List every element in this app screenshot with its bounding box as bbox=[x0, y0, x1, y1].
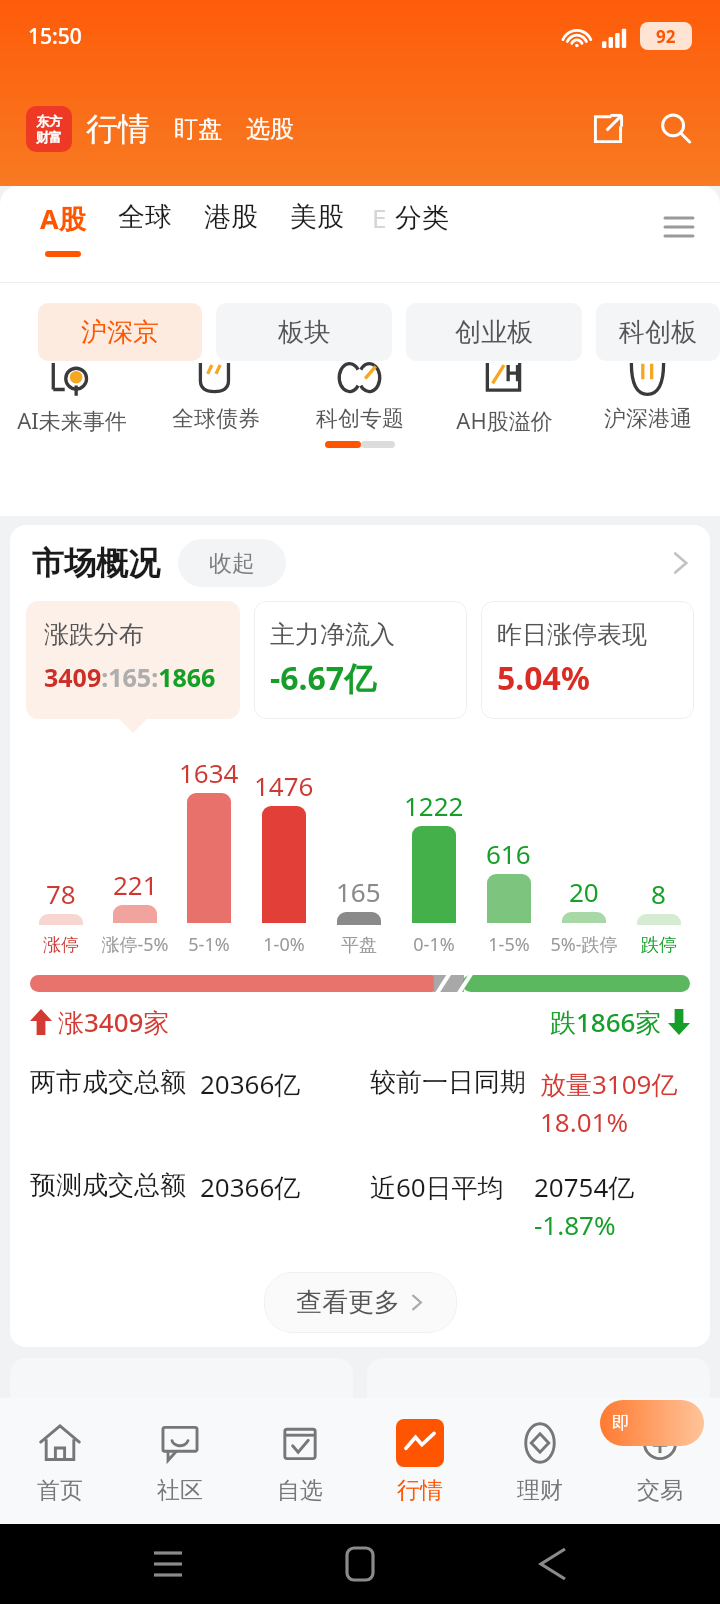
staticText: 分类 bbox=[395, 201, 449, 235]
staticText: 近60日平均 bbox=[370, 1169, 504, 1205]
staticText: 昨日涨停表现 bbox=[497, 619, 647, 650]
staticText: 5-1% bbox=[188, 932, 230, 957]
staticText: 92 bbox=[656, 25, 676, 48]
staticText: 理财 bbox=[517, 1476, 563, 1505]
staticText: 行情 bbox=[397, 1476, 443, 1505]
staticText: 涨跌分布 bbox=[44, 619, 144, 650]
staticText: 放量3109亿 bbox=[540, 1066, 678, 1102]
button[interactable]: 全球债券 bbox=[144, 363, 288, 433]
staticText: 221 bbox=[113, 867, 158, 902]
staticText: 科创专题 bbox=[316, 405, 404, 433]
staticText: 全球 bbox=[118, 200, 172, 234]
staticText: 20366亿 bbox=[200, 1169, 301, 1205]
button[interactable]: 首页 bbox=[0, 1398, 120, 1524]
button[interactable]: AI未来事件 bbox=[0, 363, 144, 435]
button[interactable]: Share bbox=[586, 107, 630, 151]
staticText: 创业板 bbox=[455, 316, 533, 349]
staticText: 3409:165:1866 bbox=[44, 660, 216, 694]
staticText: -6.67亿 bbox=[270, 656, 377, 700]
staticText: 预测成交总额 bbox=[30, 1169, 186, 1202]
staticText: 两市成交总额 bbox=[30, 1066, 186, 1099]
staticText: 165 bbox=[336, 874, 381, 909]
button[interactable]: 选股 bbox=[246, 114, 294, 144]
button[interactable]: 沪深港通 bbox=[576, 363, 720, 433]
staticText: 收起 bbox=[209, 549, 255, 578]
staticText: 美股 bbox=[290, 200, 344, 234]
button[interactable]: AH股溢价 bbox=[432, 363, 576, 435]
staticText: 财富 bbox=[36, 129, 62, 145]
button[interactable]: 主力净流入 bbox=[254, 601, 467, 719]
button[interactable]: Home bbox=[335, 1539, 385, 1589]
button[interactable]: 昨日涨停表现 bbox=[481, 601, 694, 719]
button[interactable]: 板块 bbox=[216, 303, 392, 361]
staticText: 自选 bbox=[277, 1476, 323, 1505]
staticText: 18.01% bbox=[540, 1104, 629, 1139]
staticText: E bbox=[372, 200, 387, 235]
button[interactable]: 查看更多 bbox=[264, 1272, 457, 1333]
staticText: AI未来事件 bbox=[17, 405, 127, 435]
staticText: 东方 bbox=[36, 113, 62, 129]
button[interactable]: 社区 bbox=[120, 1398, 240, 1524]
staticText: 社区 bbox=[157, 1476, 203, 1505]
staticText: 1-5% bbox=[488, 932, 530, 957]
button[interactable]: 盯盘 bbox=[174, 114, 222, 144]
button[interactable]: All categories bbox=[652, 200, 706, 254]
staticText: 20 bbox=[569, 874, 599, 909]
staticText: 首页 bbox=[37, 1476, 83, 1505]
staticText: 5.04% bbox=[497, 656, 590, 700]
button[interactable]: Back bbox=[528, 1539, 578, 1589]
staticText: -1.87% bbox=[534, 1207, 616, 1242]
staticText: 涨停-5% bbox=[101, 932, 169, 957]
staticText: 查看更多 bbox=[296, 1286, 400, 1319]
staticText: 15:50 bbox=[28, 22, 82, 51]
staticText: 交易 bbox=[637, 1476, 683, 1505]
staticText: 跌停 bbox=[641, 934, 677, 957]
button[interactable]: 科创板 bbox=[596, 303, 720, 361]
staticText: 涨3409家 bbox=[58, 1004, 170, 1040]
staticText: 沪深港通 bbox=[604, 405, 692, 433]
staticText: 沪深京 bbox=[81, 316, 159, 349]
button[interactable]: 涨跌分布 bbox=[26, 601, 240, 719]
staticText: 较前一日同期 bbox=[370, 1066, 526, 1099]
button[interactable]: Search bbox=[654, 107, 698, 151]
staticText: 0-1% bbox=[413, 932, 455, 957]
button[interactable]: 行情 bbox=[360, 1398, 480, 1524]
button[interactable]: 港股 bbox=[188, 200, 274, 248]
staticText: AH股溢价 bbox=[456, 405, 553, 435]
staticText: 涨停 bbox=[43, 934, 79, 957]
staticText: 跌1866家 bbox=[550, 1004, 662, 1040]
staticText: 78 bbox=[46, 876, 76, 911]
staticText: 港股 bbox=[204, 200, 258, 234]
staticText: 1634 bbox=[179, 755, 239, 790]
button[interactable]: 创业板 bbox=[406, 303, 582, 361]
button[interactable]: 全球 bbox=[102, 200, 188, 248]
staticText: 板块 bbox=[278, 316, 330, 349]
staticText: 市场概况 bbox=[32, 543, 160, 583]
button[interactable]: 沪深京 bbox=[38, 303, 202, 361]
staticText: 616 bbox=[486, 836, 531, 871]
staticText: 8 bbox=[651, 876, 666, 911]
button[interactable]: A股 bbox=[24, 200, 102, 257]
button[interactable]: 科创专题 bbox=[288, 363, 432, 433]
button[interactable]: 行情 bbox=[86, 109, 150, 149]
staticText: 主力净流入 bbox=[270, 619, 395, 650]
staticText: 科创板 bbox=[619, 316, 697, 349]
staticText: 全球债券 bbox=[172, 405, 260, 433]
button[interactable]: 市场概况 bbox=[10, 525, 710, 601]
button[interactable]: E bbox=[360, 200, 461, 235]
button[interactable]: 自选 bbox=[240, 1398, 360, 1524]
staticText: 1222 bbox=[404, 788, 464, 823]
staticText: A股 bbox=[40, 200, 86, 237]
staticText: 20754亿 bbox=[534, 1169, 635, 1205]
button[interactable]: Recents bbox=[143, 1539, 193, 1589]
staticText: 1476 bbox=[254, 768, 314, 803]
staticText: 20366亿 bbox=[200, 1066, 301, 1102]
staticText: 5%-跌停 bbox=[550, 932, 618, 957]
staticText: 1-0% bbox=[263, 932, 305, 957]
button[interactable]: 收起 bbox=[178, 539, 286, 587]
button[interactable]: 美股 bbox=[274, 200, 360, 248]
button[interactable]: 理财 bbox=[480, 1398, 600, 1524]
button[interactable]: 交易 bbox=[600, 1398, 720, 1524]
